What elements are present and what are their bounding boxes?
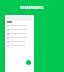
button[interactable] <box>7 44 32 47</box>
button[interactable] <box>7 28 32 31</box>
button[interactable] <box>7 36 32 39</box>
staticText: REMINDERS <box>20 5 44 10</box>
button[interactable] <box>7 24 32 27</box>
button[interactable] <box>7 32 32 35</box>
button[interactable]: Add reminder <box>26 60 31 65</box>
button[interactable] <box>7 40 32 43</box>
